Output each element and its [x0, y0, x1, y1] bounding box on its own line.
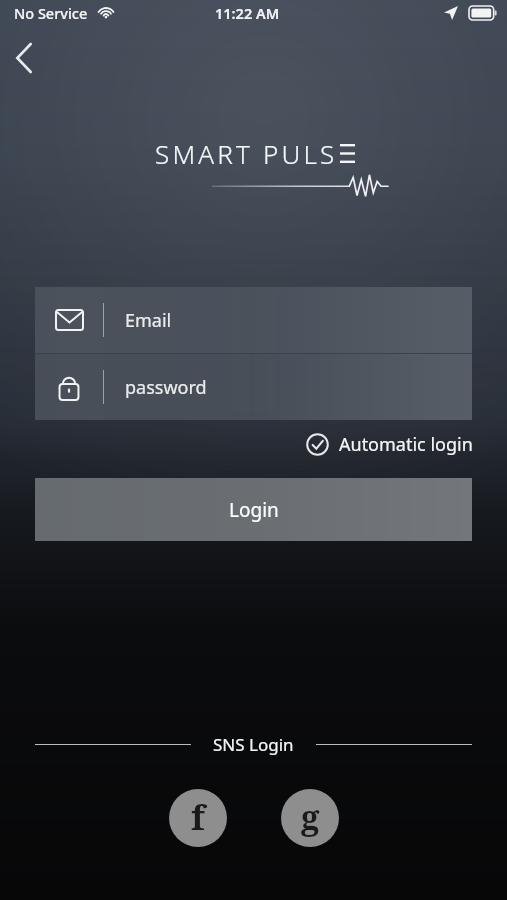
button[interactable]: Automatic login — [302, 428, 477, 461]
button[interactable]: Sign in with Facebook — [169, 789, 227, 847]
button[interactable]: Back — [0, 34, 48, 82]
staticText: No Service — [14, 3, 88, 23]
button[interactable]: Sign in with Google — [281, 789, 339, 847]
staticText: Automatic login — [339, 432, 473, 457]
button[interactable]: password — [35, 354, 472, 420]
button[interactable]: Login — [35, 478, 472, 541]
staticText: Login — [229, 497, 279, 523]
staticText: g — [301, 794, 320, 839]
staticText: 11:22 AM — [215, 3, 280, 23]
staticText: password — [125, 375, 207, 400]
staticText: Email — [125, 308, 172, 333]
staticText: SMART PULS — [155, 136, 338, 171]
staticText: f — [191, 794, 205, 840]
button[interactable]: Email — [35, 287, 472, 353]
staticText: SNS Login — [213, 733, 294, 756]
